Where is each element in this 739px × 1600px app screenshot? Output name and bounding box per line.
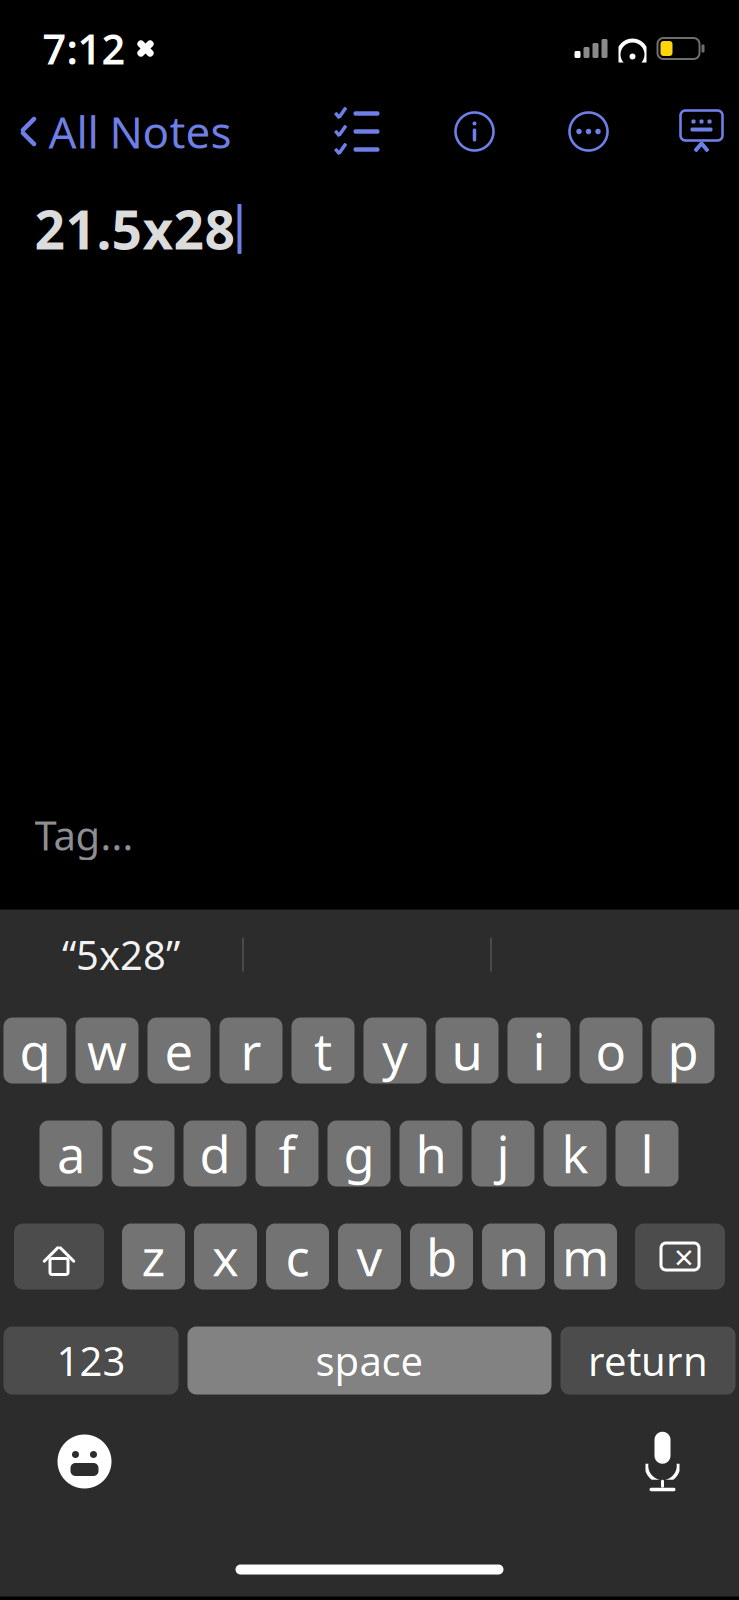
staticText: y	[382, 1017, 408, 1084]
button[interactable]: space	[187, 1326, 551, 1394]
staticText: p	[667, 1017, 698, 1084]
button[interactable]: z	[122, 1223, 185, 1289]
button[interactable]: v	[338, 1223, 401, 1289]
button[interactable]: Shift	[14, 1223, 104, 1289]
staticText: f	[278, 1120, 295, 1187]
button[interactable]: Dictation	[632, 1420, 692, 1502]
button[interactable]: More	[560, 103, 616, 159]
staticText: b	[426, 1223, 457, 1290]
staticText: q	[19, 1017, 50, 1084]
staticText: r	[240, 1017, 261, 1084]
staticText: d	[199, 1120, 230, 1187]
staticText: Tag...	[34, 808, 133, 861]
button[interactable]: g	[327, 1120, 390, 1186]
staticText: ×	[674, 1233, 694, 1279]
staticText: o	[595, 1017, 626, 1084]
button[interactable]: t	[291, 1017, 354, 1083]
button[interactable]: q	[3, 1017, 66, 1083]
staticText: All Notes	[48, 102, 231, 161]
staticText: t	[314, 1017, 332, 1084]
staticText: v	[356, 1223, 382, 1290]
staticText: w	[87, 1017, 127, 1084]
staticText: 123	[56, 1334, 125, 1387]
button[interactable]: Delete	[635, 1223, 725, 1289]
button[interactable]: Info	[446, 103, 502, 159]
button[interactable]: b	[410, 1223, 473, 1289]
staticText: g	[343, 1120, 374, 1187]
button[interactable]: l	[615, 1120, 678, 1186]
button[interactable]: Checklist	[326, 104, 388, 158]
button[interactable]: d	[183, 1120, 246, 1186]
button[interactable]: p	[651, 1017, 714, 1083]
button[interactable]: s	[111, 1120, 174, 1186]
staticText: “5x28”	[62, 928, 180, 981]
button[interactable]: f	[255, 1120, 318, 1186]
button[interactable]: u	[435, 1017, 498, 1083]
button[interactable]: e	[147, 1017, 210, 1083]
staticText: return	[588, 1334, 708, 1387]
button[interactable]: Tag...	[0, 798, 133, 871]
staticText: j	[496, 1120, 509, 1187]
button[interactable]: j	[471, 1120, 534, 1186]
staticText: 7:12	[42, 21, 125, 76]
button[interactable]: r	[219, 1017, 282, 1083]
staticText: e	[164, 1017, 193, 1084]
staticText: x	[212, 1223, 239, 1290]
staticText: i	[532, 1017, 545, 1084]
staticText: k	[561, 1120, 588, 1187]
staticText: n	[498, 1223, 529, 1290]
button[interactable]: “5x28”	[0, 926, 242, 982]
button[interactable]: m	[554, 1223, 617, 1289]
staticText: l	[640, 1120, 653, 1187]
button[interactable]: a	[39, 1120, 102, 1186]
staticText: u	[451, 1017, 482, 1084]
staticText: c	[285, 1223, 309, 1290]
staticText: space	[315, 1334, 423, 1387]
button[interactable]: y	[363, 1017, 426, 1083]
staticText: m	[562, 1223, 609, 1290]
staticText: 21.5x28	[34, 193, 235, 264]
button[interactable]: i	[507, 1017, 570, 1083]
button[interactable]: All Notes	[0, 92, 231, 171]
staticText: a	[57, 1120, 85, 1187]
staticText: s	[131, 1120, 155, 1187]
button[interactable]: k	[543, 1120, 606, 1186]
button[interactable]: return	[560, 1326, 735, 1394]
button[interactable]: w	[75, 1017, 138, 1083]
button[interactable]: 123	[3, 1326, 178, 1394]
staticText: h	[415, 1120, 446, 1187]
button[interactable]: n	[482, 1223, 545, 1289]
button[interactable]: x	[194, 1223, 257, 1289]
button[interactable]: o	[579, 1017, 642, 1083]
button[interactable]: Emoji	[46, 1423, 122, 1499]
button[interactable]: Hide Keyboard	[670, 101, 739, 161]
button[interactable]: h	[399, 1120, 462, 1186]
button[interactable]: c	[266, 1223, 329, 1289]
staticText: z	[141, 1223, 165, 1290]
